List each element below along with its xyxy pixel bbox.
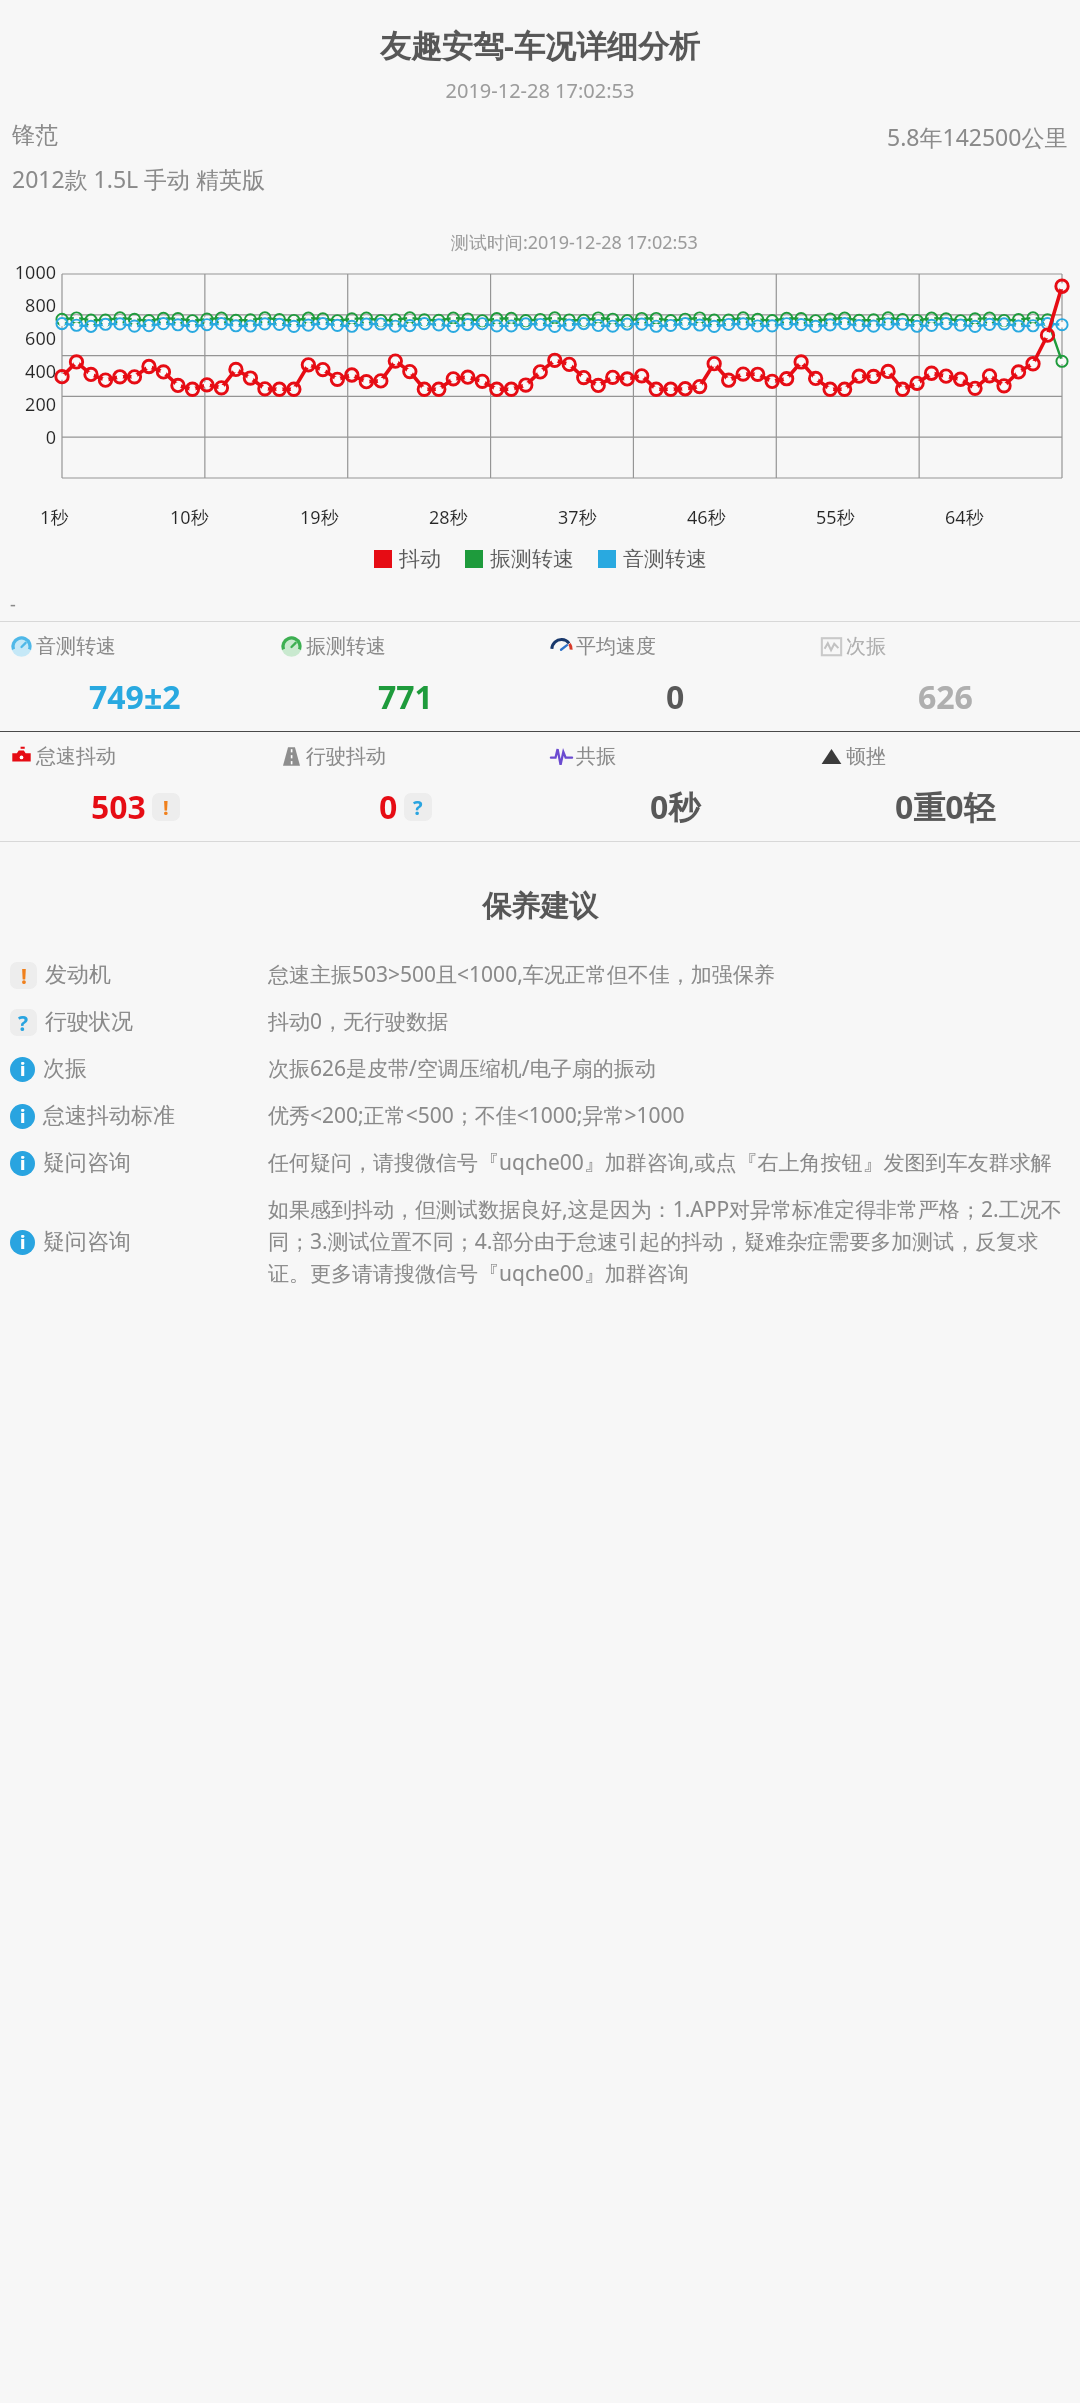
staticText: 19秒 — [300, 505, 339, 530]
staticText: ! — [163, 794, 169, 821]
staticText: 疑问咨询 — [43, 1228, 131, 1256]
button[interactable]: i — [10, 1101, 1070, 1130]
staticText: 46秒 — [687, 505, 726, 530]
staticText: 64秒 — [945, 505, 984, 530]
staticText: 怠速主振503>500且<1000,车况正常但不佳，加强保养 — [268, 960, 1070, 989]
button[interactable]: 行驶抖动 — [280, 744, 540, 769]
staticText: 锋范 — [12, 121, 58, 150]
staticText: 抖动 — [399, 546, 441, 572]
staticText: 任何疑问，请搜微信号『uqche00』加群咨询,或点『右上角按钮』发图到车友群求… — [268, 1148, 1070, 1177]
staticText: 771 — [378, 675, 433, 719]
button[interactable]: 平均速度 — [550, 634, 810, 659]
staticText: - — [10, 592, 16, 617]
staticText: 0 — [0, 425, 56, 450]
staticText: ? — [413, 794, 423, 821]
staticText: 626 — [918, 675, 973, 719]
staticText: 1秒 — [40, 505, 69, 530]
staticText: 发动机 — [45, 961, 111, 989]
button[interactable]: i — [10, 1195, 1070, 1288]
staticText: 2019-12-28 17:02:53 — [0, 77, 1080, 104]
staticText: 顿挫 — [846, 744, 886, 769]
staticText: 优秀<200;正常<500；不佳<1000;异常>1000 — [268, 1101, 1070, 1130]
staticText: ? — [18, 1009, 29, 1036]
staticText: 行驶状况 — [45, 1008, 133, 1036]
staticText: 友趣安驾-车况详细分析 — [0, 24, 1080, 66]
button[interactable]: 详情说明 — [152, 793, 180, 821]
staticText: 1000 — [0, 260, 56, 285]
staticText: 0重0轻 — [895, 785, 996, 829]
staticText: 保养建议 — [0, 888, 1080, 925]
button[interactable]: ! — [10, 960, 1070, 989]
button[interactable]: i — [10, 1054, 1070, 1083]
staticText: 0 — [666, 675, 685, 719]
staticText: 疑问咨询 — [43, 1149, 131, 1177]
staticText: 振测转速 — [306, 634, 386, 659]
staticText: 音测转速 — [36, 634, 116, 659]
button[interactable]: 音测转速 — [10, 634, 270, 659]
button[interactable]: 音测转速 — [598, 546, 707, 572]
staticText: i — [20, 1057, 26, 1082]
button[interactable]: 振测转速 — [280, 634, 540, 659]
button[interactable]: 怠速抖动 — [10, 744, 270, 769]
staticText: 振测转速 — [490, 546, 574, 572]
staticText: 0 — [379, 785, 398, 829]
staticText: 800 — [0, 293, 56, 318]
button[interactable]: 详情说明 — [404, 793, 432, 821]
staticText: 行驶抖动 — [306, 744, 386, 769]
staticText: i — [20, 1151, 26, 1176]
staticText: 次振626是皮带/空调压缩机/电子扇的振动 — [268, 1054, 1070, 1083]
staticText: 5.8年142500公里 — [887, 121, 1068, 152]
staticText: 400 — [0, 359, 56, 384]
staticText: 37秒 — [558, 505, 597, 530]
staticText: 28秒 — [429, 505, 468, 530]
button[interactable]: ? — [10, 1007, 1070, 1036]
staticText: 抖动0，无行驶数据 — [268, 1007, 1070, 1036]
staticText: 测试时间:2019-12-28 17:02:53 — [451, 230, 698, 255]
button[interactable]: 抖动 — [374, 546, 441, 572]
staticText: i — [20, 1104, 26, 1129]
staticText: 共振 — [576, 744, 616, 769]
staticText: 200 — [0, 392, 56, 417]
staticText: 音测转速 — [623, 546, 707, 572]
staticText: ! — [21, 962, 27, 989]
staticText: i — [20, 1230, 26, 1255]
button[interactable]: 共振 — [550, 744, 810, 769]
staticText: 次振 — [846, 634, 886, 659]
staticText: 0秒 — [650, 785, 701, 829]
staticText: 55秒 — [816, 505, 855, 530]
staticText: 平均速度 — [576, 634, 656, 659]
staticText: 怠速抖动 — [36, 744, 116, 769]
staticText: 503 — [91, 785, 146, 829]
staticText: 2012款 1.5L 手动 精英版 — [12, 163, 266, 194]
button[interactable]: 振测转速 — [465, 546, 574, 572]
button[interactable]: 次振 — [820, 634, 1080, 659]
staticText: 10秒 — [170, 505, 209, 530]
staticText: 怠速抖动标准 — [43, 1102, 175, 1130]
staticText: 749±2 — [89, 675, 181, 719]
button[interactable]: 顿挫 — [820, 744, 1080, 769]
staticText: 次振 — [43, 1055, 87, 1083]
staticText: 600 — [0, 326, 56, 351]
staticText: 如果感到抖动，但测试数据良好,这是因为：1.APP对异常标准定得非常严格；2.工… — [268, 1195, 1070, 1288]
button[interactable]: i — [10, 1148, 1070, 1177]
